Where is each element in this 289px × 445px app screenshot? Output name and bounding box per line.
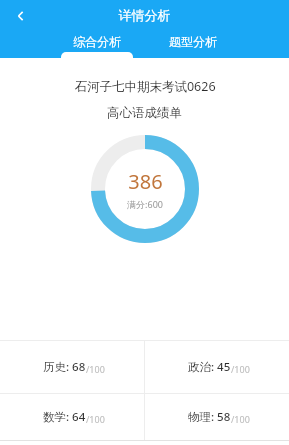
staticText: 题型分析 — [169, 34, 217, 49]
button[interactable]: Back — [4, 2, 38, 30]
button[interactable]: 物理: 58 — [144, 393, 289, 441]
button[interactable]: 历史: 68 — [0, 340, 144, 393]
staticText: /100 — [231, 413, 250, 425]
staticText: /100 — [86, 413, 105, 425]
staticText: 综合分析 — [73, 34, 121, 49]
button[interactable]: 数学: 64 — [0, 393, 144, 441]
staticText: /100 — [86, 363, 105, 375]
staticText: 政治: 45 — [188, 359, 231, 375]
staticText: 386 — [128, 168, 163, 195]
staticText: 高心语成绩单 — [107, 105, 182, 121]
button[interactable]: 题型分析 — [145, 31, 241, 51]
staticText: 详情分析 — [0, 7, 289, 23]
staticText: /100 — [231, 363, 250, 375]
staticText: 数学: 64 — [43, 409, 86, 425]
staticText: 物理: 58 — [188, 409, 231, 425]
button[interactable]: 政治: 45 — [144, 340, 289, 393]
button[interactable]: 综合分析 — [49, 31, 145, 51]
staticText: 历史: 68 — [43, 359, 86, 375]
staticText: 石河子七中期末考试0626 — [74, 78, 216, 95]
staticText: 满分:600 — [127, 198, 163, 210]
